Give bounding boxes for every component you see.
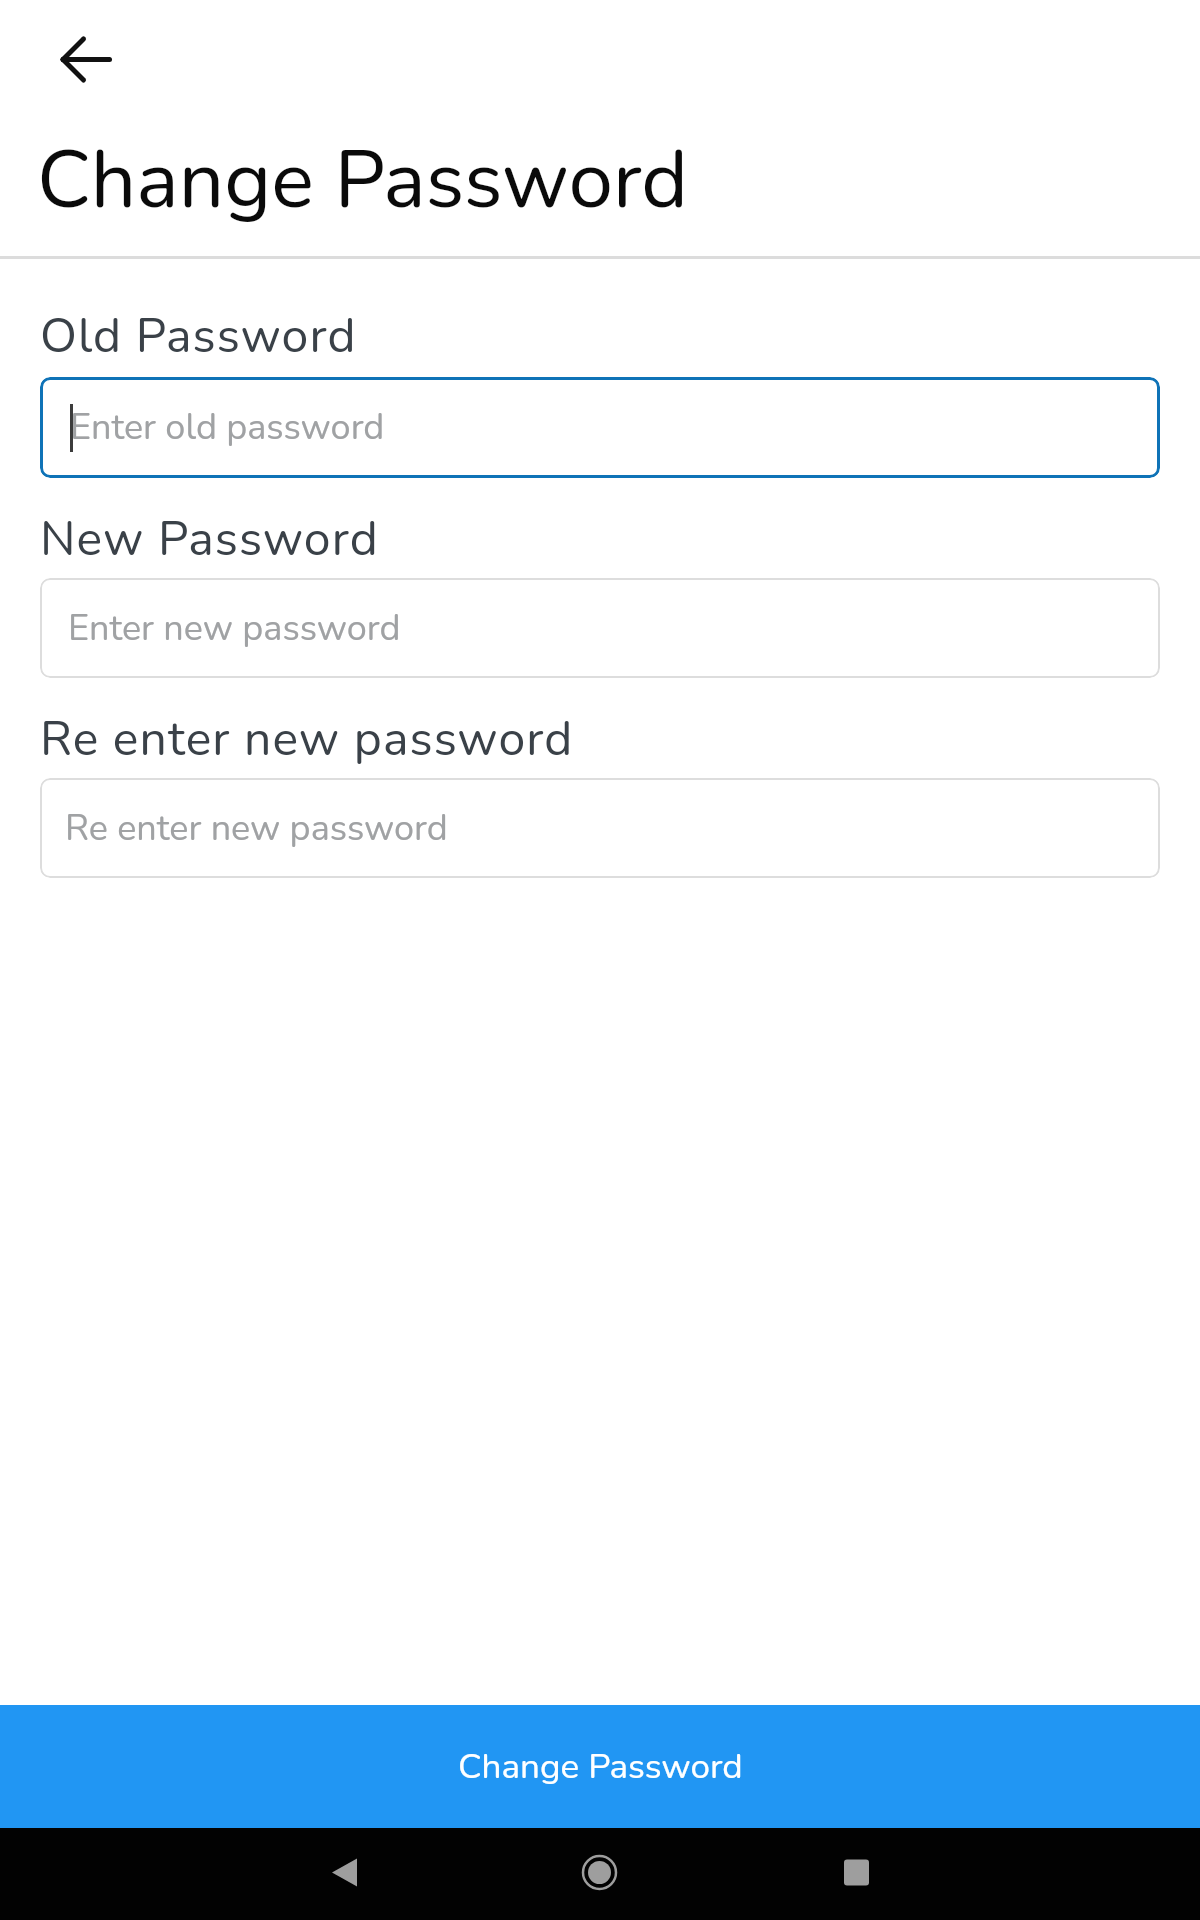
staticText: Re enter new password [65,804,448,853]
button[interactable] [318,1845,373,1900]
button[interactable] [572,1845,627,1900]
button[interactable]: Enter new password [40,578,1160,678]
button[interactable]: Change Password [0,1705,1200,1828]
staticText: Re enter new password [40,706,574,771]
button[interactable]: Re enter new password [40,778,1160,878]
staticText: Enter new password [68,604,401,653]
staticText: Old Password [40,303,357,368]
staticText: Change Password [37,126,688,235]
staticText: Enter old password [70,403,385,452]
staticText: New Password [40,506,379,571]
button[interactable]: Enter old password [40,377,1160,478]
button[interactable] [829,1845,884,1900]
staticText: Change Password [458,1743,743,1791]
button[interactable] [52,28,120,90]
